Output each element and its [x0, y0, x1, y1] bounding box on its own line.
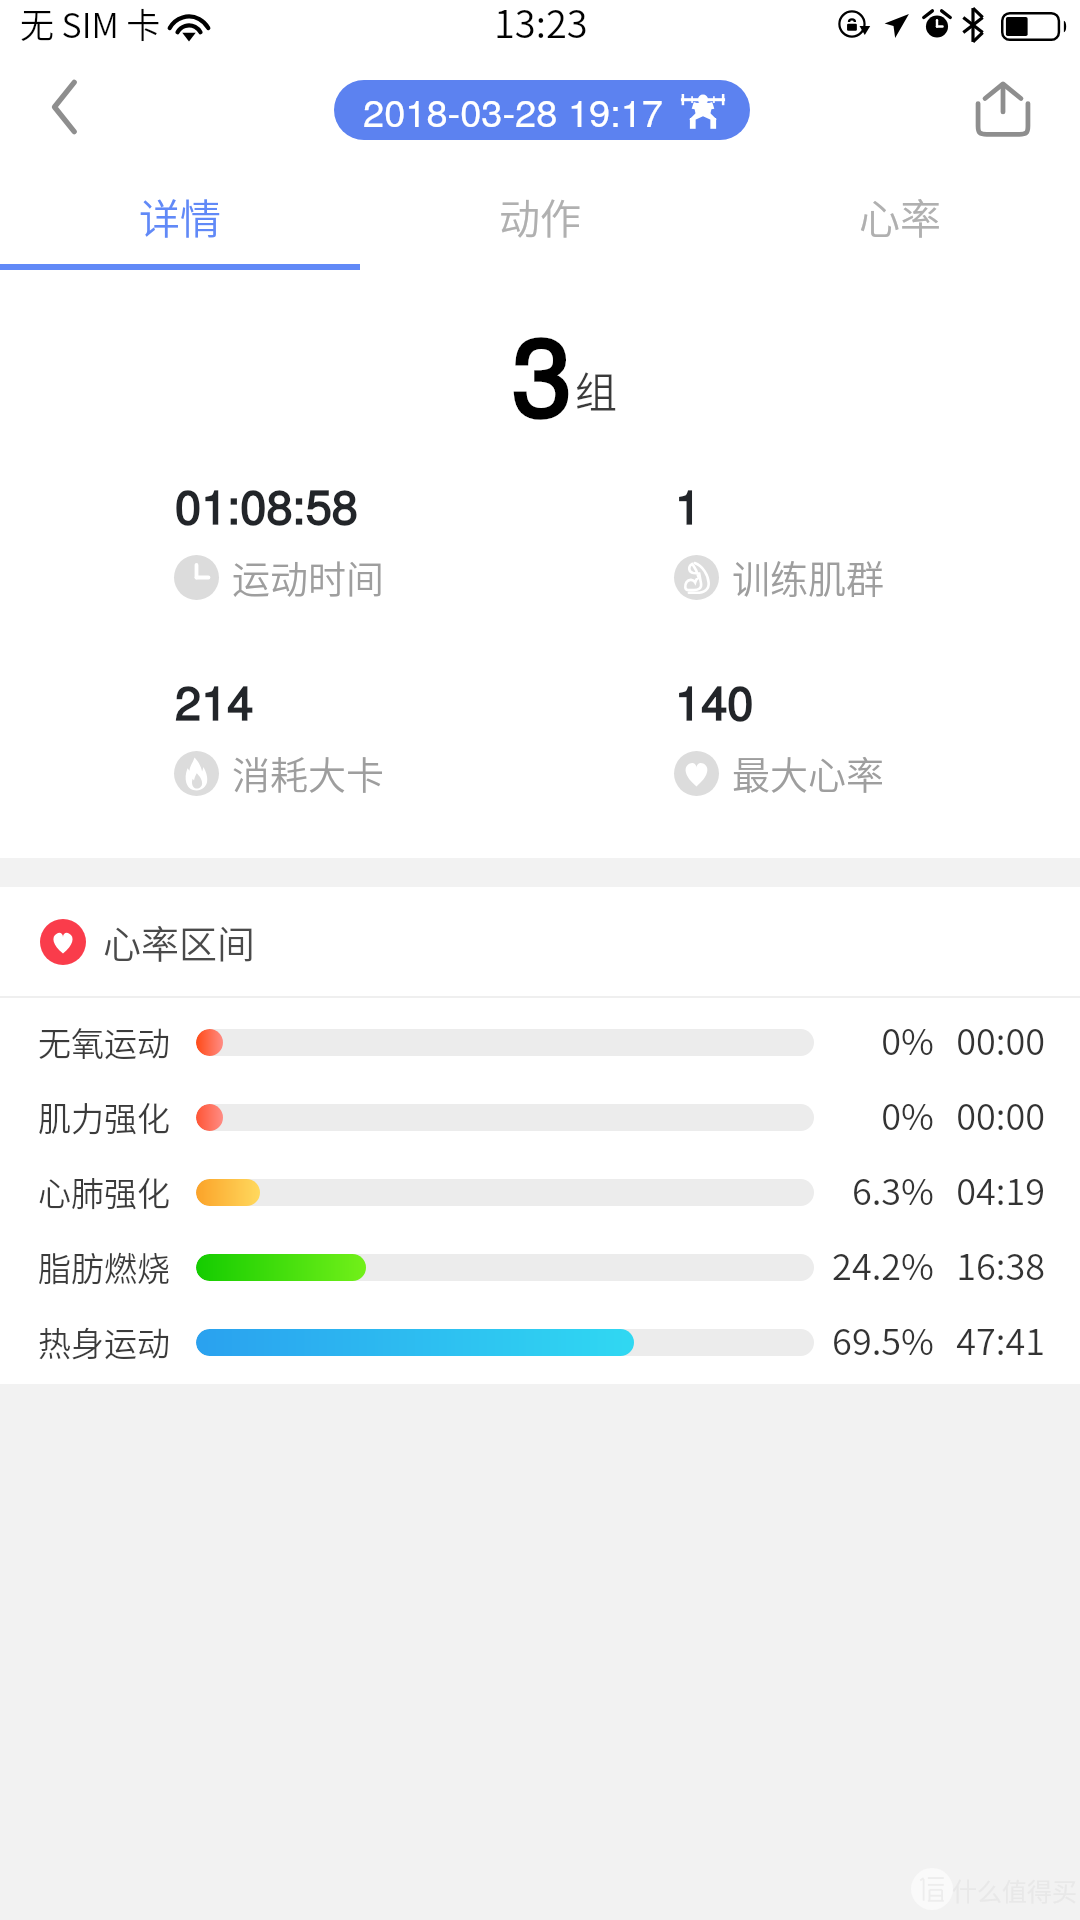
button[interactable]: 动作	[360, 168, 720, 262]
staticText: 无 SIM 卡	[20, 0, 161, 48]
staticText: 16:38	[921, 1238, 1045, 1290]
staticText: 47:41	[921, 1313, 1045, 1365]
staticText: 01:08:58	[175, 470, 358, 537]
staticText: 什么值得买	[952, 1872, 1078, 1908]
staticText: 04:19	[921, 1163, 1045, 1215]
button[interactable]: 心率区间	[0, 887, 1080, 996]
button[interactable]: 2018-03-28 19:17	[334, 80, 750, 140]
staticText: 最大心率	[732, 745, 885, 800]
staticText: 心率	[859, 186, 941, 245]
button[interactable]: Back	[16, 59, 112, 155]
staticText: 2018-03-28 19:17	[363, 83, 663, 137]
staticText: 动作	[499, 186, 581, 245]
staticText: 3	[512, 292, 573, 447]
button[interactable]: 热身运动	[0, 1305, 1080, 1380]
staticText: 140	[675, 666, 754, 733]
staticText: 肌力强化	[38, 1093, 170, 1141]
staticText: 24.2%	[790, 1238, 934, 1290]
staticText: 运动时间	[232, 549, 385, 604]
staticText: 0%	[790, 1013, 934, 1065]
staticText: 1	[675, 470, 702, 537]
staticText: 详情	[139, 186, 221, 245]
staticText: 214	[175, 666, 254, 733]
staticText: 00:00	[921, 1013, 1045, 1065]
staticText: 69.5%	[790, 1313, 934, 1365]
button[interactable]: 肌力强化	[0, 1080, 1080, 1155]
staticText: 心肺强化	[38, 1168, 170, 1216]
staticText: 消耗大卡	[232, 745, 385, 800]
staticText: 组	[575, 359, 618, 420]
button[interactable]: 详情	[0, 168, 360, 262]
button[interactable]: Share	[955, 60, 1051, 156]
button[interactable]: 无氧运动	[0, 1005, 1080, 1080]
staticText: 无氧运动	[38, 1018, 170, 1066]
staticText: 心率区间	[103, 914, 256, 969]
button[interactable]: 心肺强化	[0, 1155, 1080, 1230]
staticText: 训练肌群	[732, 549, 885, 604]
staticText: 13:23	[494, 0, 588, 49]
button[interactable]: 心率	[720, 168, 1080, 262]
staticText: 6.3%	[790, 1163, 934, 1215]
staticText: 热身运动	[38, 1318, 170, 1366]
staticText: 00:00	[921, 1088, 1045, 1140]
staticText: 脂肪燃烧	[38, 1243, 170, 1291]
staticText: 0%	[790, 1088, 934, 1140]
button[interactable]: 脂肪燃烧	[0, 1230, 1080, 1305]
